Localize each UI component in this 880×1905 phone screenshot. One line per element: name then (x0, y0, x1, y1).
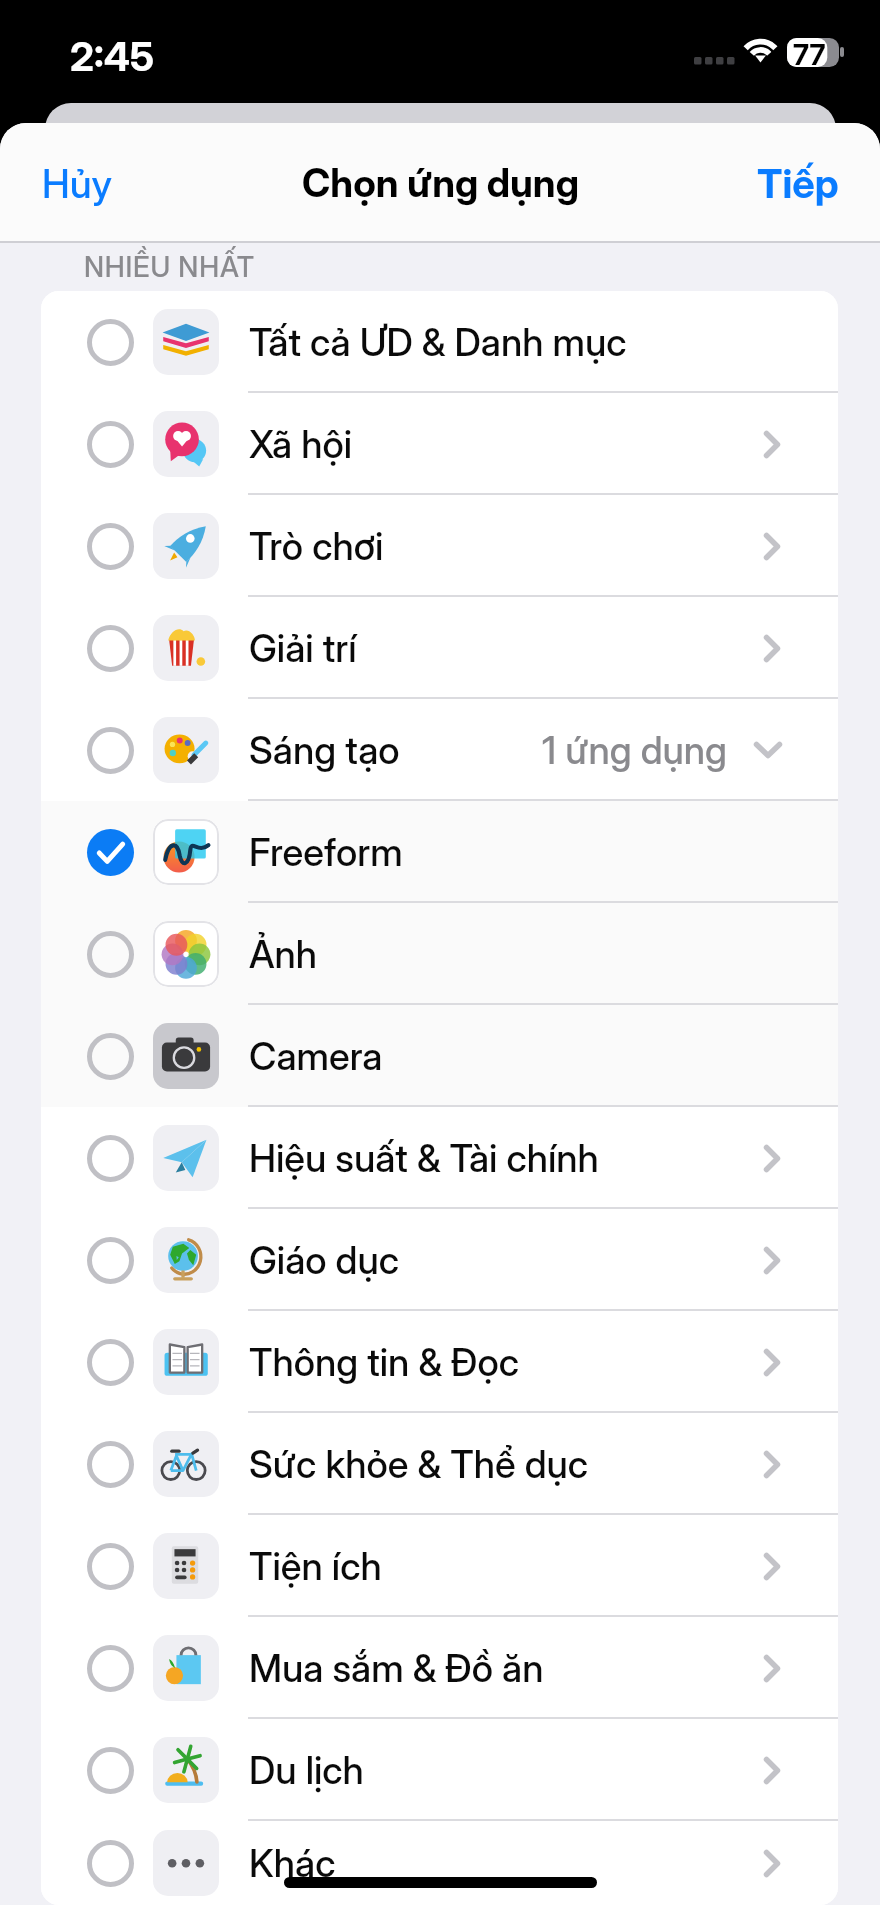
button[interactable]: Freeform (41, 801, 838, 903)
button[interactable]: Tiếp (727, 137, 880, 229)
staticText: Tất cả ƯD & Danh mục (249, 319, 627, 365)
button[interactable]: Mua sắm & Đồ ăn (41, 1617, 838, 1719)
button[interactable]: Sáng tạo (41, 699, 838, 801)
staticText: 1 ứng dụng (542, 727, 727, 773)
staticText: Mua sắm & Đồ ăn (249, 1645, 544, 1691)
staticText: Camera (249, 1033, 383, 1079)
button[interactable]: Trò chơi (41, 495, 838, 597)
staticText: Tiếp (757, 159, 839, 207)
staticText: Giải trí (249, 625, 357, 671)
button[interactable]: Tiện ích (41, 1515, 838, 1617)
staticText: Ảnh (249, 931, 318, 977)
staticText: Hiệu suất & Tài chính (249, 1135, 599, 1181)
button[interactable]: Xã hội (41, 393, 838, 495)
button[interactable]: Khác (41, 1821, 838, 1905)
button[interactable]: Camera (41, 1005, 838, 1107)
button[interactable]: Ảnh (41, 903, 838, 1005)
staticText: Xã hội (249, 421, 353, 467)
staticText: Du lịch (249, 1747, 364, 1793)
staticText: Freeform (249, 829, 403, 875)
staticText: Hủy (42, 160, 113, 207)
staticText: 2:45 (70, 32, 154, 80)
staticText: Giáo dục (249, 1237, 400, 1283)
button[interactable]: Giải trí (41, 597, 838, 699)
staticText: Sức khỏe & Thể dục (249, 1441, 589, 1487)
button[interactable]: Tất cả ƯD & Danh mục (41, 291, 838, 393)
staticText: Trò chơi (249, 523, 384, 569)
button[interactable]: Giáo dục (41, 1209, 838, 1311)
button[interactable]: Hiệu suất & Tài chính (41, 1107, 838, 1209)
button[interactable]: Thông tin & Đọc (41, 1311, 838, 1413)
button[interactable]: Du lịch (41, 1719, 838, 1821)
button[interactable]: Sức khỏe & Thể dục (41, 1413, 838, 1515)
staticText: Chọn ứng dụng (302, 159, 579, 206)
staticText: Khác (249, 1840, 336, 1886)
staticText: Tiện ích (249, 1543, 382, 1589)
button[interactable]: Hủy (0, 138, 143, 229)
staticText: Sáng tạo (249, 727, 400, 773)
staticText: 77 (793, 37, 826, 66)
staticText: NHIỀU NHẤT (84, 250, 255, 284)
staticText: Thông tin & Đọc (249, 1339, 519, 1385)
